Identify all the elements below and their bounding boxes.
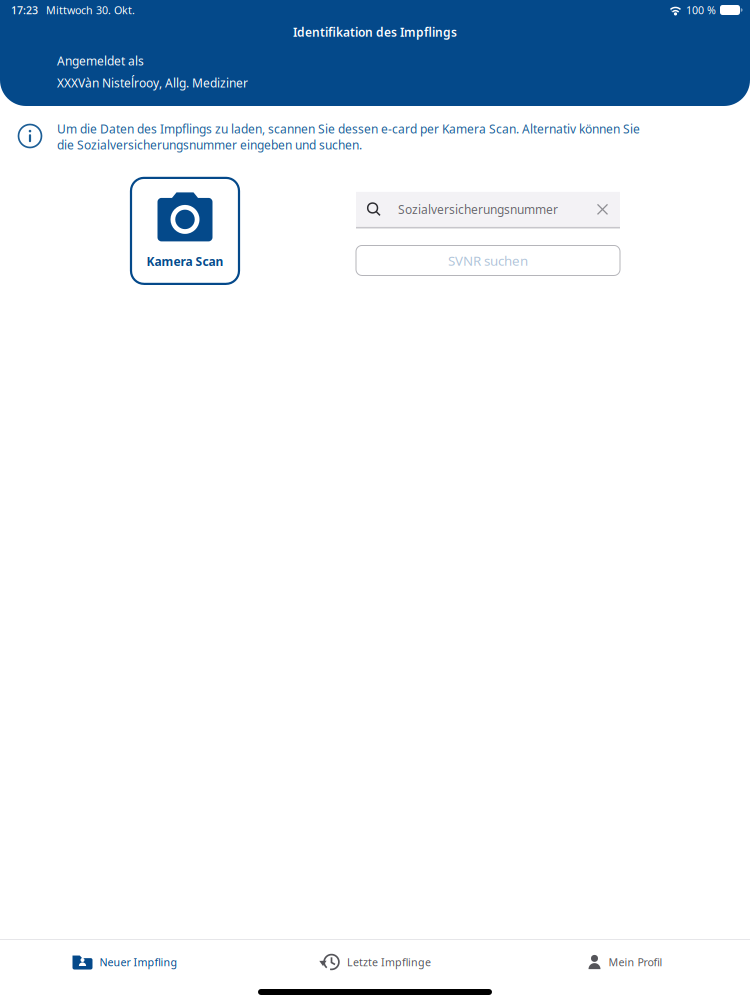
button[interactable]: Letzte Impflinge	[250, 940, 500, 984]
button[interactable]: Mein Profil	[500, 940, 750, 984]
staticText: Angemeldet als	[57, 53, 144, 69]
staticText: Mittwoch 30. Okt.	[46, 3, 135, 17]
staticText: Sozialversicherungsnummer	[398, 201, 558, 217]
staticText: 100 %	[686, 3, 716, 17]
staticText: SVNR suchen	[448, 252, 528, 269]
staticText: XXXVàn Nisteĺrooy, Allg. Mediziner	[57, 75, 248, 91]
staticText: 17:23	[11, 3, 38, 17]
staticText: Neuer Impfling	[99, 955, 177, 969]
button[interactable]: Neuer Impfling	[0, 940, 250, 984]
button[interactable]: SVNR suchen	[356, 245, 620, 275]
staticText: Kamera Scan	[146, 253, 223, 269]
staticText: Um die Daten des Impflings zu laden, sca…	[57, 121, 640, 153]
staticText: Identifikation des Impflings	[293, 24, 457, 40]
staticText: Mein Profil	[608, 955, 662, 969]
button[interactable]: Kamera Scan	[131, 178, 239, 284]
staticText: Letzte Impflinge	[347, 955, 431, 969]
button[interactable]: Löschen	[597, 204, 620, 215]
